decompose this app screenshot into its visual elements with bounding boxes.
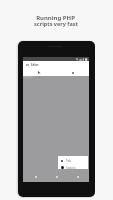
button[interactable]: Tab — [58, 158, 88, 163]
button[interactable]: Open navigation menu — [25, 63, 30, 67]
staticText: scripts very fast — [34, 20, 78, 27]
button[interactable]: Spaces — [58, 165, 88, 169]
staticText: Tab — [66, 159, 71, 163]
staticText: Spaces — [66, 166, 76, 169]
staticText: Running PHP — [36, 14, 75, 22]
staticText: Editor — [31, 63, 39, 67]
